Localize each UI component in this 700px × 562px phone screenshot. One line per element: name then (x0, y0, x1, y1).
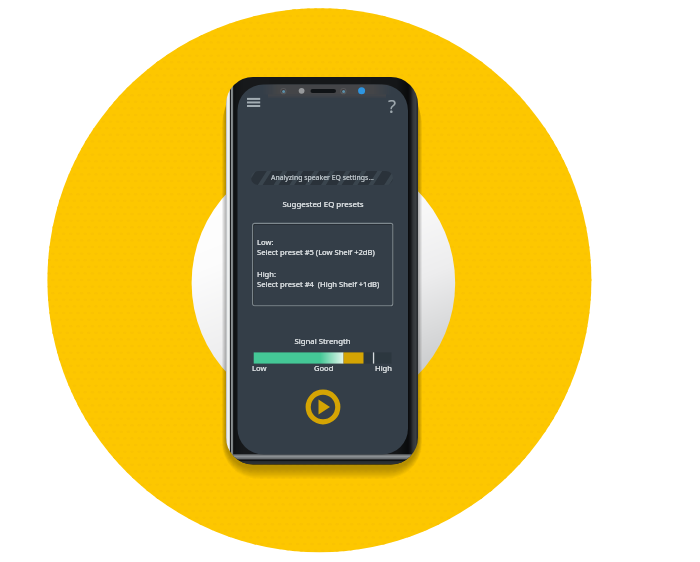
staticText: Suggested EQ presets (282, 199, 364, 210)
button[interactable]: Help (383, 93, 401, 113)
staticText: Low (252, 363, 267, 373)
staticText: High (375, 363, 392, 373)
button[interactable]: Menu (243, 93, 265, 110)
staticText: Analyzing speaker EQ settings... (271, 173, 374, 182)
staticText: Select preset #4 (High Shelf +1dB) (257, 279, 380, 289)
staticText: Low: (257, 237, 274, 247)
staticText: Signal Strength (294, 336, 351, 347)
staticText: High: (257, 269, 276, 279)
staticText: ? (388, 93, 397, 113)
staticText: Good (314, 363, 334, 373)
button[interactable]: Play (305, 389, 341, 425)
staticText: Select preset #5 (Low Shelf +2dB) (257, 247, 375, 257)
